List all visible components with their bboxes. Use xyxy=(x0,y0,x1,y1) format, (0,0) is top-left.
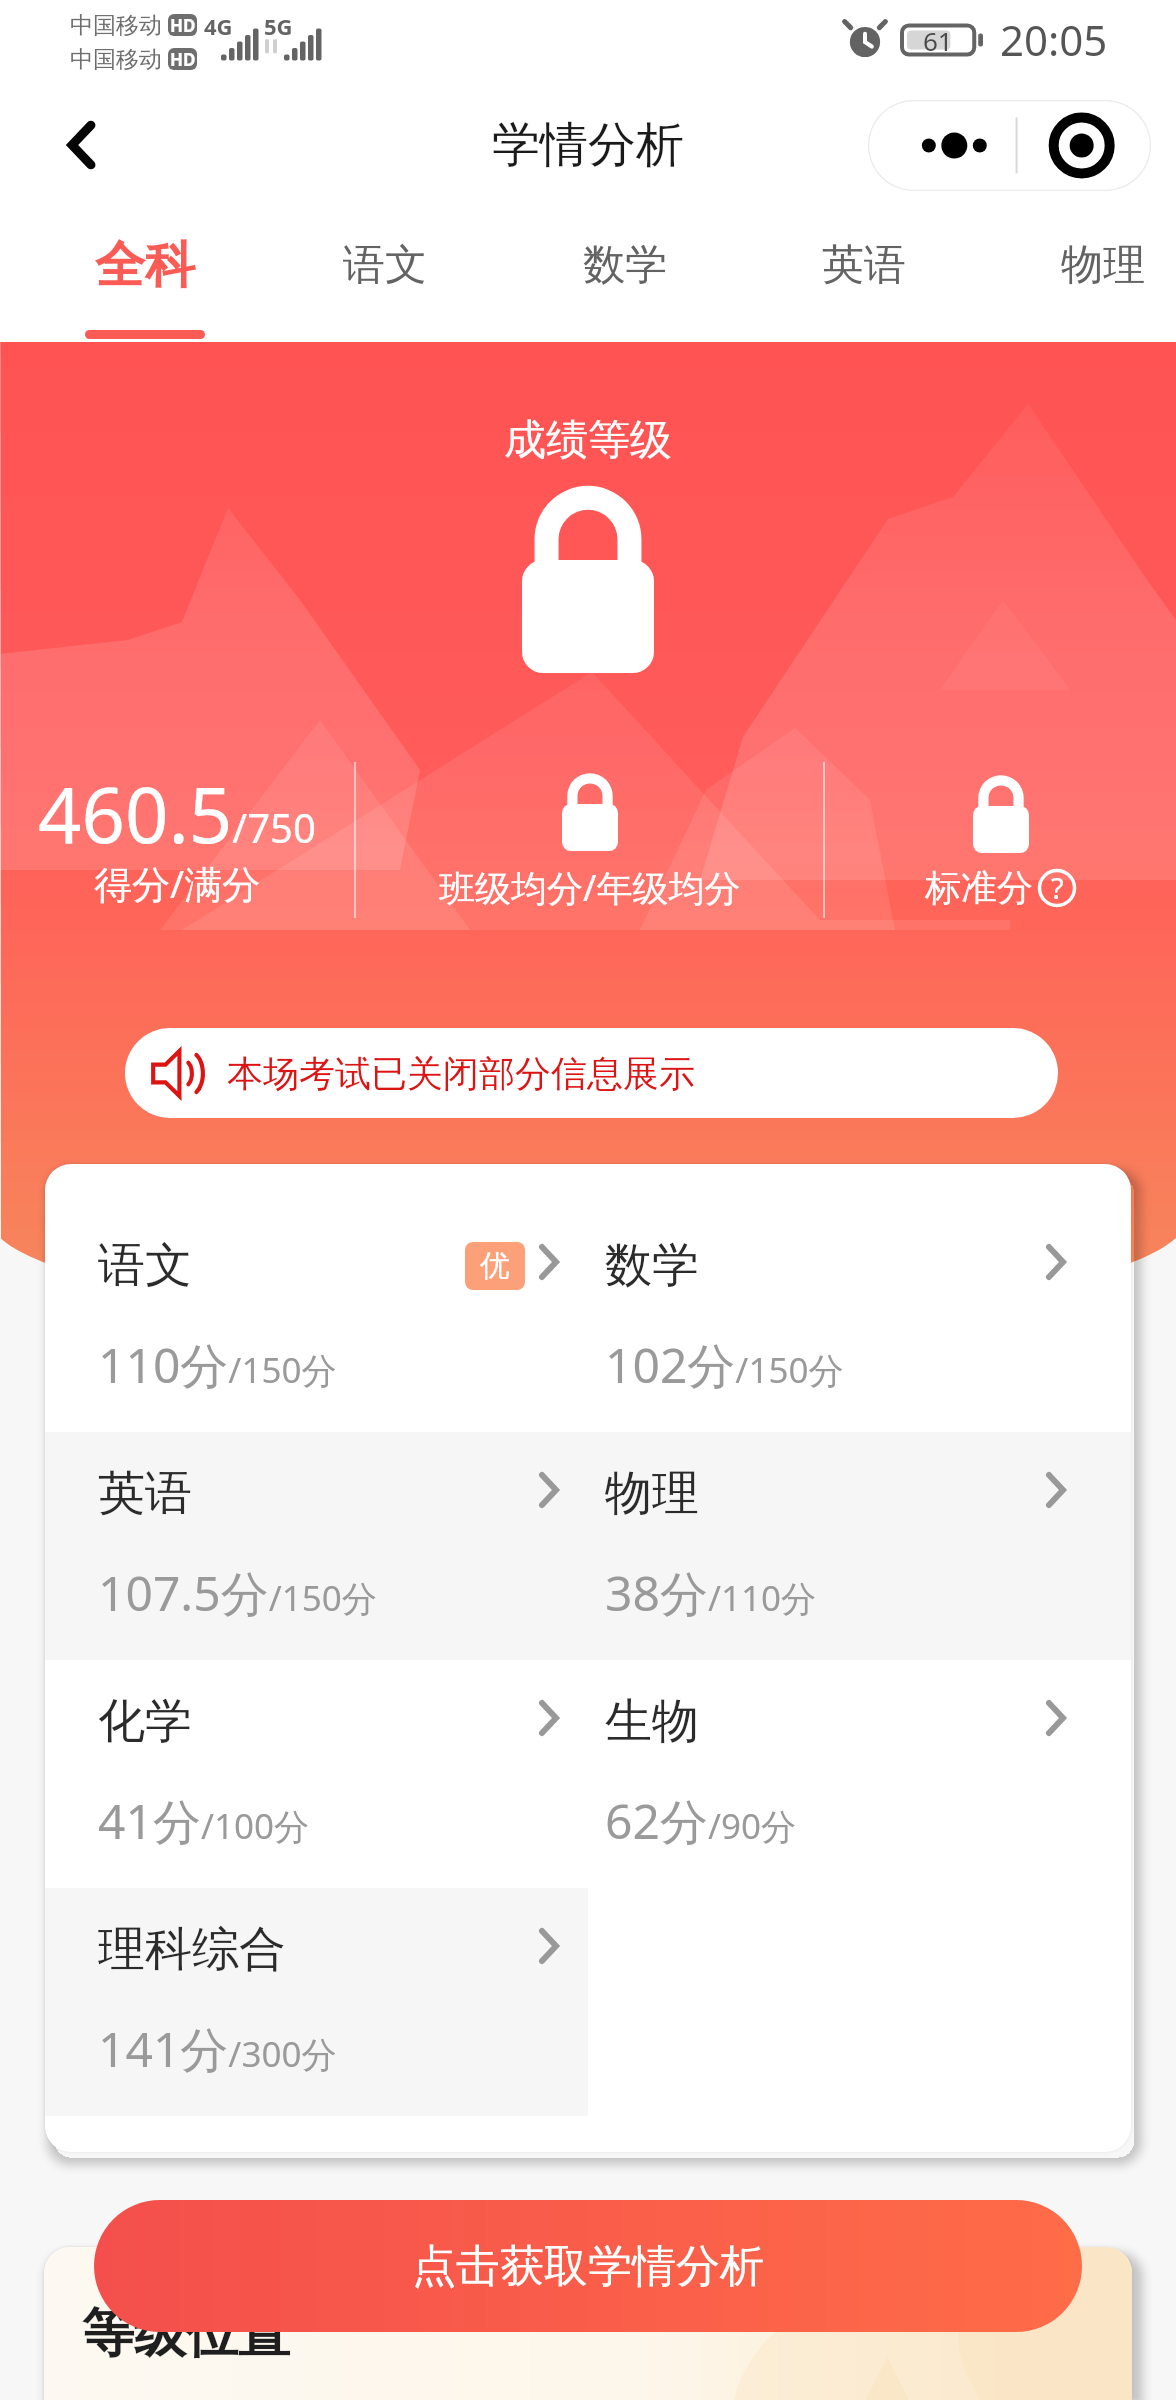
button[interactable]: 英语 xyxy=(754,206,974,342)
button[interactable]: 物理 xyxy=(993,206,1176,342)
staticText: 优 xyxy=(480,1247,510,1285)
button[interactable]: Back xyxy=(33,103,117,187)
staticText: 数学 xyxy=(605,1236,699,1295)
button[interactable]: 英语 xyxy=(45,1432,588,1660)
staticText: 4G xyxy=(204,11,233,41)
staticText: 102分/150分 xyxy=(605,1332,844,1398)
staticText: 38分/110分 xyxy=(605,1560,816,1626)
button[interactable]: 等级位置 xyxy=(44,2247,1132,2400)
button[interactable]: Menu xyxy=(868,100,1151,191)
staticText: 物理 xyxy=(1061,239,1145,292)
staticText: 5G xyxy=(264,11,293,41)
staticText: HD xyxy=(170,48,196,70)
staticText: 141分/300分 xyxy=(98,2016,337,2082)
button[interactable]: 理科综合 xyxy=(45,1888,588,2116)
staticText: 化学 xyxy=(98,1692,192,1751)
staticText: 成绩等级 xyxy=(504,414,672,467)
staticText: HD xyxy=(170,14,196,36)
staticText: ? xyxy=(1051,868,1064,906)
staticText: 全科 xyxy=(95,234,195,297)
button[interactable]: 数学 xyxy=(515,206,735,342)
staticText: 得分/满分 xyxy=(94,857,261,909)
staticText: 理科综合 xyxy=(98,1920,286,1979)
staticText: 标准分 xyxy=(925,865,1033,910)
staticText: 物理 xyxy=(605,1464,699,1523)
button[interactable]: 物理 xyxy=(588,1432,1131,1660)
staticText: 62分/90分 xyxy=(605,1788,796,1854)
button[interactable]: 化学 xyxy=(45,1660,588,1888)
staticText: 点击获取学情分析 xyxy=(412,2239,764,2294)
staticText: 本场考试已关闭部分信息展示 xyxy=(227,1051,695,1096)
staticText: 数学 xyxy=(583,239,667,292)
staticText: 中国移动 xyxy=(70,45,162,74)
staticText: 110分/150分 xyxy=(98,1332,337,1398)
staticText: 英语 xyxy=(98,1464,192,1523)
button[interactable]: 数学 xyxy=(588,1204,1131,1432)
staticText: 20:05 xyxy=(1000,11,1108,68)
staticText: 61 xyxy=(923,23,953,58)
staticText: 学情分析 xyxy=(492,115,684,175)
staticText: 班级均分/年级均分 xyxy=(439,863,741,912)
staticText: 107.5分/150分 xyxy=(98,1560,377,1626)
button[interactable]: 语文 xyxy=(45,1204,588,1432)
staticText: 生物 xyxy=(605,1692,699,1751)
staticText: 41分/100分 xyxy=(98,1788,309,1854)
staticText: 中国移动 xyxy=(70,11,162,40)
staticText: 语文 xyxy=(98,1236,192,1295)
button[interactable]: 生物 xyxy=(588,1660,1131,1888)
staticText: 英语 xyxy=(822,239,906,292)
staticText: 语文 xyxy=(343,239,427,292)
staticText: 460.5/750 xyxy=(38,762,316,866)
button[interactable]: 全科 xyxy=(35,206,255,342)
button[interactable]: 点击获取学情分析 xyxy=(94,2200,1082,2332)
staticText: 等级位置 xyxy=(82,2301,290,2367)
button[interactable]: 语文 xyxy=(275,206,495,342)
button[interactable]: 本场考试已关闭部分信息展示 xyxy=(125,1028,1058,1118)
